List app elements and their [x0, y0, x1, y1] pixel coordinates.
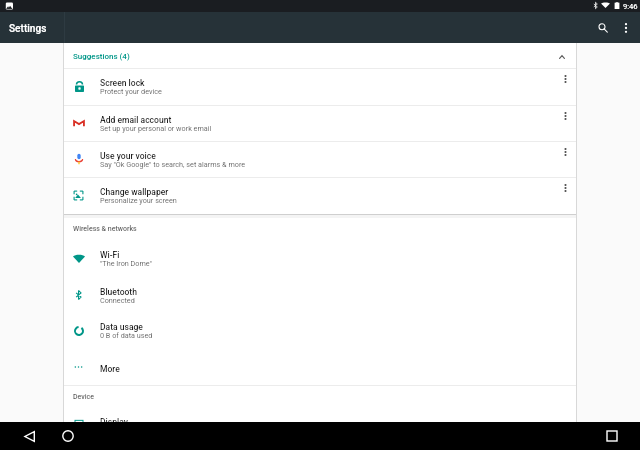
staticText: Display [100, 417, 128, 427]
staticText: Device [73, 393, 94, 401]
button[interactable]: Wi-Fi [64, 240, 577, 276]
staticText: Add email account [100, 115, 172, 125]
staticText: Bluetooth [100, 287, 137, 297]
button[interactable]: Change wallpaper [64, 178, 577, 214]
staticText: Protect your device [100, 87, 162, 95]
staticText: Say "Ok Google" to search, set alarms & … [100, 160, 246, 168]
button[interactable]: Options [553, 178, 577, 214]
button[interactable]: Options [553, 142, 577, 178]
staticText: 0 B of data used [100, 331, 153, 339]
button[interactable]: Use your voice [64, 142, 577, 178]
staticText: Data usage [100, 322, 143, 332]
staticText: More [100, 364, 120, 374]
staticText: Set up your personal or work email [100, 124, 212, 132]
button[interactable]: More [64, 349, 577, 385]
staticText: "The Iron Dome" [100, 259, 152, 267]
button[interactable]: Search [591, 12, 615, 43]
button[interactable]: Options [553, 69, 577, 105]
staticText: Use your voice [100, 151, 156, 161]
button[interactable]: Bluetooth [64, 277, 577, 313]
button[interactable]: Screen lock [64, 69, 577, 105]
staticText: 9:46 [623, 2, 638, 11]
button[interactable]: Back [16, 422, 42, 450]
staticText: Wireless & networks [73, 225, 137, 233]
button[interactable]: Suggestions (4) [64, 43, 577, 68]
button[interactable]: More options [613, 12, 637, 43]
staticText: Suggestions (4) [73, 52, 130, 61]
staticText: Personalize your screen [100, 196, 177, 204]
staticText: Settings [9, 23, 47, 35]
button[interactable]: Home [55, 422, 81, 450]
staticText: Wi-Fi [100, 250, 120, 260]
button[interactable]: Recent apps [599, 422, 625, 450]
button[interactable]: Data usage [64, 312, 577, 348]
button[interactable]: Display [64, 402, 577, 438]
staticText: Screen lock [100, 78, 145, 88]
staticText: Change wallpaper [100, 187, 169, 197]
button[interactable]: Options [553, 106, 577, 142]
staticText: Connected [100, 296, 135, 304]
button[interactable]: Add email account [64, 106, 577, 142]
